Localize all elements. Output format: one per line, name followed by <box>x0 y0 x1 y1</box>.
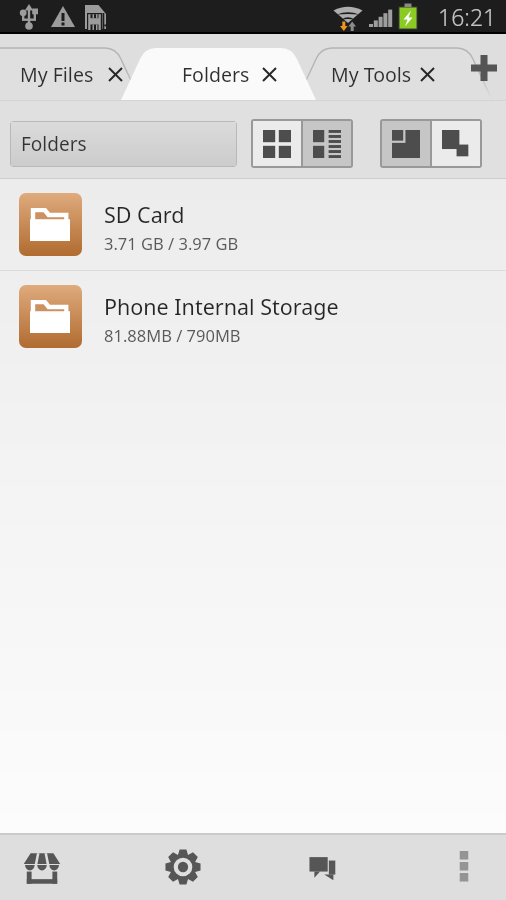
button[interactable]: Folders <box>164 48 279 101</box>
button[interactable]: Option 1 <box>432 121 480 166</box>
staticText: 3.71 GB / 3.97 GB <box>104 232 239 254</box>
button[interactable]: Phone Internal Storage <box>0 271 506 362</box>
staticText: Folders <box>182 61 250 88</box>
button[interactable]: Folders <box>11 122 236 166</box>
staticText: My Tools <box>331 61 412 88</box>
button[interactable]: More options <box>420 833 506 900</box>
staticText: Folders <box>21 131 87 157</box>
button[interactable]: Add tab <box>462 34 506 101</box>
staticText: SD Card <box>104 200 185 229</box>
button[interactable]: My Files <box>2 48 125 101</box>
staticText: Phone Internal Storage <box>104 292 339 321</box>
staticText: 16:21 <box>438 1 497 32</box>
staticText: My Files <box>20 61 94 88</box>
button[interactable]: Store <box>0 833 84 900</box>
button[interactable]: Settings <box>113 833 253 900</box>
button[interactable]: Option 0 <box>382 121 430 166</box>
button[interactable]: SD Card <box>0 179 506 270</box>
button[interactable]: Option 1 <box>303 121 351 166</box>
button[interactable]: Option 0 <box>253 121 301 166</box>
staticText: 81.88MB / 790MB <box>104 324 241 346</box>
button[interactable]: Messages <box>252 833 392 900</box>
button[interactable]: My Tools <box>313 48 437 101</box>
